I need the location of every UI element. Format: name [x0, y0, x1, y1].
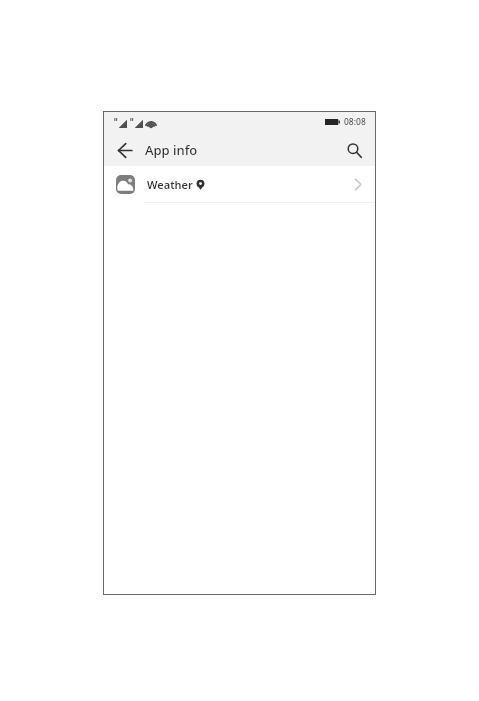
staticText: App info — [145, 141, 198, 159]
button[interactable]: Back — [104, 134, 145, 166]
staticText: 08:08 — [344, 116, 366, 128]
button[interactable]: Weather — [104, 166, 375, 202]
button[interactable]: Search — [338, 134, 370, 166]
staticText: Weather — [147, 177, 193, 192]
